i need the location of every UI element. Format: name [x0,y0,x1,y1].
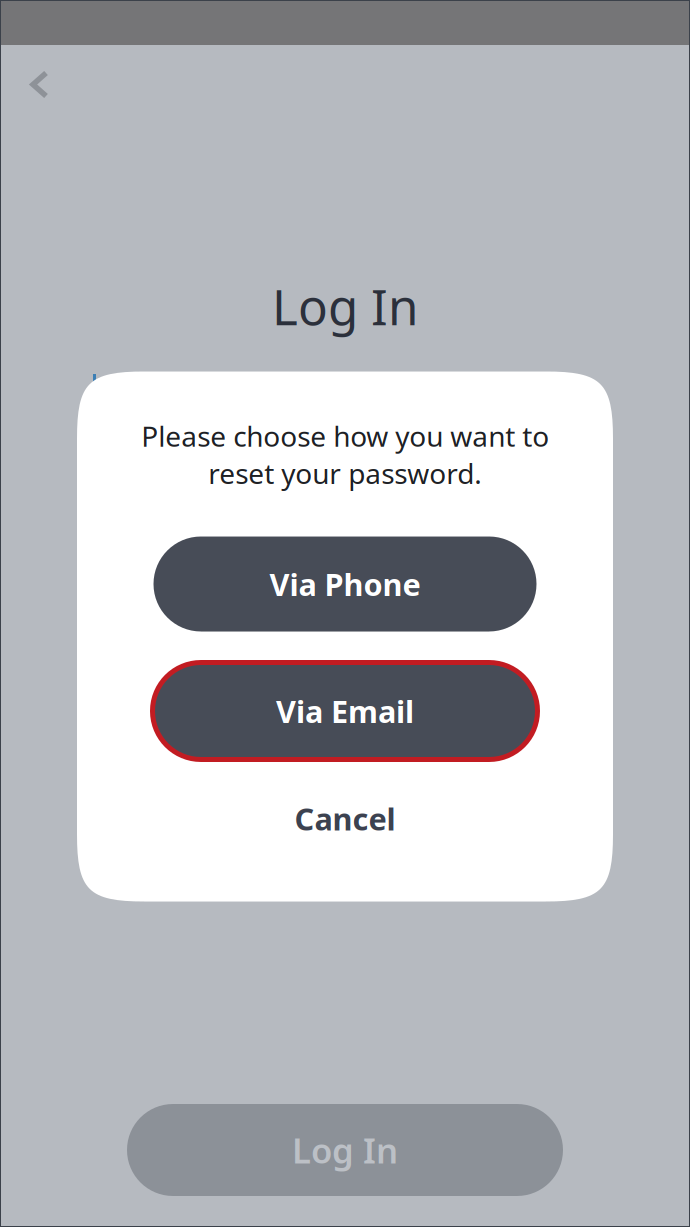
button[interactable]: Log In [127,1104,563,1196]
button[interactable]: Back [0,45,68,117]
button[interactable]: Via Phone [153,536,536,631]
staticText: Via Email [276,691,414,731]
staticText: Please choose how you want to reset your… [141,417,549,492]
staticText: Cancel [294,798,395,839]
button[interactable]: Cancel [153,798,536,838]
staticText: Log In [292,1127,398,1173]
staticText: Via Phone [269,564,420,604]
button[interactable]: Via Email [152,662,537,759]
staticText: Log In [272,273,418,339]
